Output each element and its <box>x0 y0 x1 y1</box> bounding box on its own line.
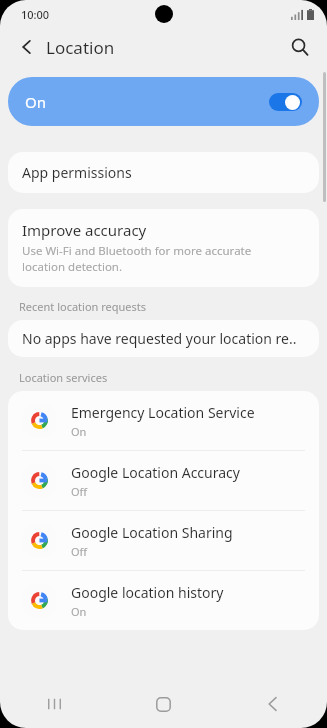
button[interactable]: Emergency Location Service <box>8 391 319 450</box>
staticText: Improve accuracy <box>22 220 147 240</box>
staticText: Location services <box>19 370 108 385</box>
staticText: Google Location Accuracy <box>71 463 240 482</box>
staticText: 10:00 <box>21 7 50 22</box>
button[interactable]: Google Location Accuracy <box>8 451 319 510</box>
staticText: Emergency Location Service <box>71 403 255 422</box>
button[interactable]: Back <box>218 680 327 728</box>
button[interactable]: On <box>8 77 319 126</box>
staticText: Location <box>46 36 115 59</box>
staticText: Google Location Sharing <box>71 523 233 542</box>
button[interactable]: Home <box>109 680 218 728</box>
button[interactable]: Back <box>10 30 44 64</box>
button[interactable]: Google location history <box>8 571 319 630</box>
staticText: On <box>71 424 87 439</box>
button[interactable]: App permissions <box>8 152 319 193</box>
button[interactable]: Recents <box>0 680 109 728</box>
staticText: On <box>25 92 46 112</box>
staticText: Google location history <box>71 583 224 602</box>
staticText: Recent location requests <box>19 299 147 314</box>
staticText: Off <box>71 484 88 499</box>
button[interactable]: No apps have requested your location re.… <box>8 320 319 357</box>
staticText: Off <box>71 544 88 559</box>
staticText: No apps have requested your location re.… <box>22 329 297 348</box>
staticText: Use Wi-Fi and Bluetooth for more accurat… <box>22 243 297 274</box>
button[interactable]: Google Location Sharing <box>8 511 319 570</box>
button[interactable]: Improve accuracy <box>8 209 319 287</box>
button[interactable]: Search <box>282 29 318 65</box>
staticText: On <box>71 604 87 619</box>
staticText: App permissions <box>22 163 132 182</box>
